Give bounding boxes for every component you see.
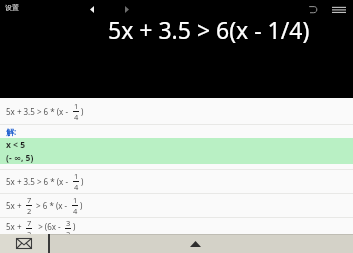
staticText: 3	[66, 218, 71, 228]
staticText: (- ∞, 5)	[6, 152, 34, 164]
button[interactable]: Menu	[330, 2, 348, 16]
staticText: 4	[74, 182, 79, 192]
staticText: 5x + 3.5 > 6 * (x -	[6, 176, 71, 187]
button[interactable]: x < 5	[0, 138, 353, 164]
button[interactable]: 设置	[3, 2, 21, 13]
button[interactable]: Expand	[50, 234, 353, 253]
button[interactable]: 5x + 3.5 > 6(x - 1/4)	[108, 14, 310, 45]
button[interactable]: 5x +	[0, 194, 353, 217]
staticText: 5x +	[6, 221, 24, 232]
staticText: 2	[66, 229, 71, 234]
staticText: > (6x -	[34, 221, 63, 232]
staticText: )	[81, 106, 84, 117]
staticText: 4	[73, 206, 78, 216]
staticText: 2	[27, 229, 32, 234]
button[interactable]: 5x + 3.5 > 6 * (x -	[0, 98, 353, 124]
staticText: > 6 * (x -	[34, 200, 70, 211]
staticText: )	[73, 221, 76, 232]
staticText: 1	[74, 101, 79, 111]
staticText: x < 5	[6, 139, 26, 151]
staticText: 2	[27, 206, 32, 216]
button[interactable]: 5x + 3.5 > 6 * (x -	[0, 170, 353, 193]
staticText: 7	[27, 195, 32, 205]
staticText: 1	[73, 195, 78, 205]
button[interactable]: Next	[119, 2, 135, 16]
button[interactable]: Messages	[0, 234, 48, 253]
button[interactable]: Previous	[84, 2, 100, 16]
staticText: 5x + 3.5 > 6 * (x -	[6, 106, 71, 117]
button[interactable]: Undo	[304, 2, 322, 16]
staticText: )	[81, 176, 84, 187]
staticText: 7	[27, 218, 32, 228]
staticText: 4	[74, 112, 79, 122]
button[interactable]: 5x +	[0, 218, 353, 234]
staticText: 5x +	[6, 200, 24, 211]
staticText: 设置	[5, 3, 19, 12]
staticText: 1	[74, 171, 79, 181]
staticText: 5x + 3.5 > 6(x - 1/4)	[108, 14, 310, 45]
staticText: 解:	[6, 126, 17, 137]
staticText: )	[80, 200, 83, 211]
